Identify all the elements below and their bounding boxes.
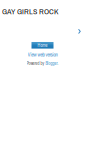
button[interactable]: GAY GIRLS ROCK [0, 0, 60, 19]
staticText: GAY GIRLS ROCK [2, 6, 58, 17]
button[interactable]: Blogger [45, 60, 57, 66]
button[interactable]: Home [31, 42, 53, 49]
staticText: Home [37, 42, 47, 48]
button[interactable]: View web version [25, 49, 59, 58]
staticText: Blogger [45, 60, 57, 66]
staticText: View web version [27, 51, 57, 58]
button[interactable]: Newer Posts [73, 26, 85, 37]
staticText: Powered by [26, 60, 45, 66]
